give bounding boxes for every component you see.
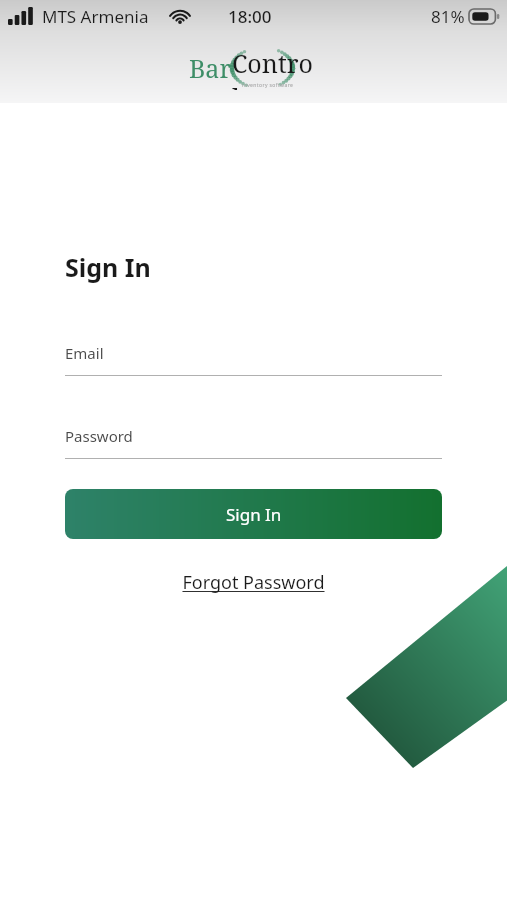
button[interactable]: Sign In [65,489,442,539]
button[interactable]: Password [65,426,442,459]
staticText: Email [65,343,104,363]
staticText: Sign In [226,503,282,526]
staticText: 18:00 [228,5,272,28]
staticText: inventory software [242,82,294,89]
staticText: Bar [189,51,232,85]
button[interactable]: Email [65,343,442,376]
staticText: Forgot Password [182,570,325,595]
staticText: Sign In [65,250,151,284]
staticText: 81% [431,5,465,28]
staticText: Password [65,426,133,446]
staticText: MTS Armenia [42,5,149,28]
staticText: Control [232,46,319,90]
button[interactable]: Forgot Password [172,566,335,599]
